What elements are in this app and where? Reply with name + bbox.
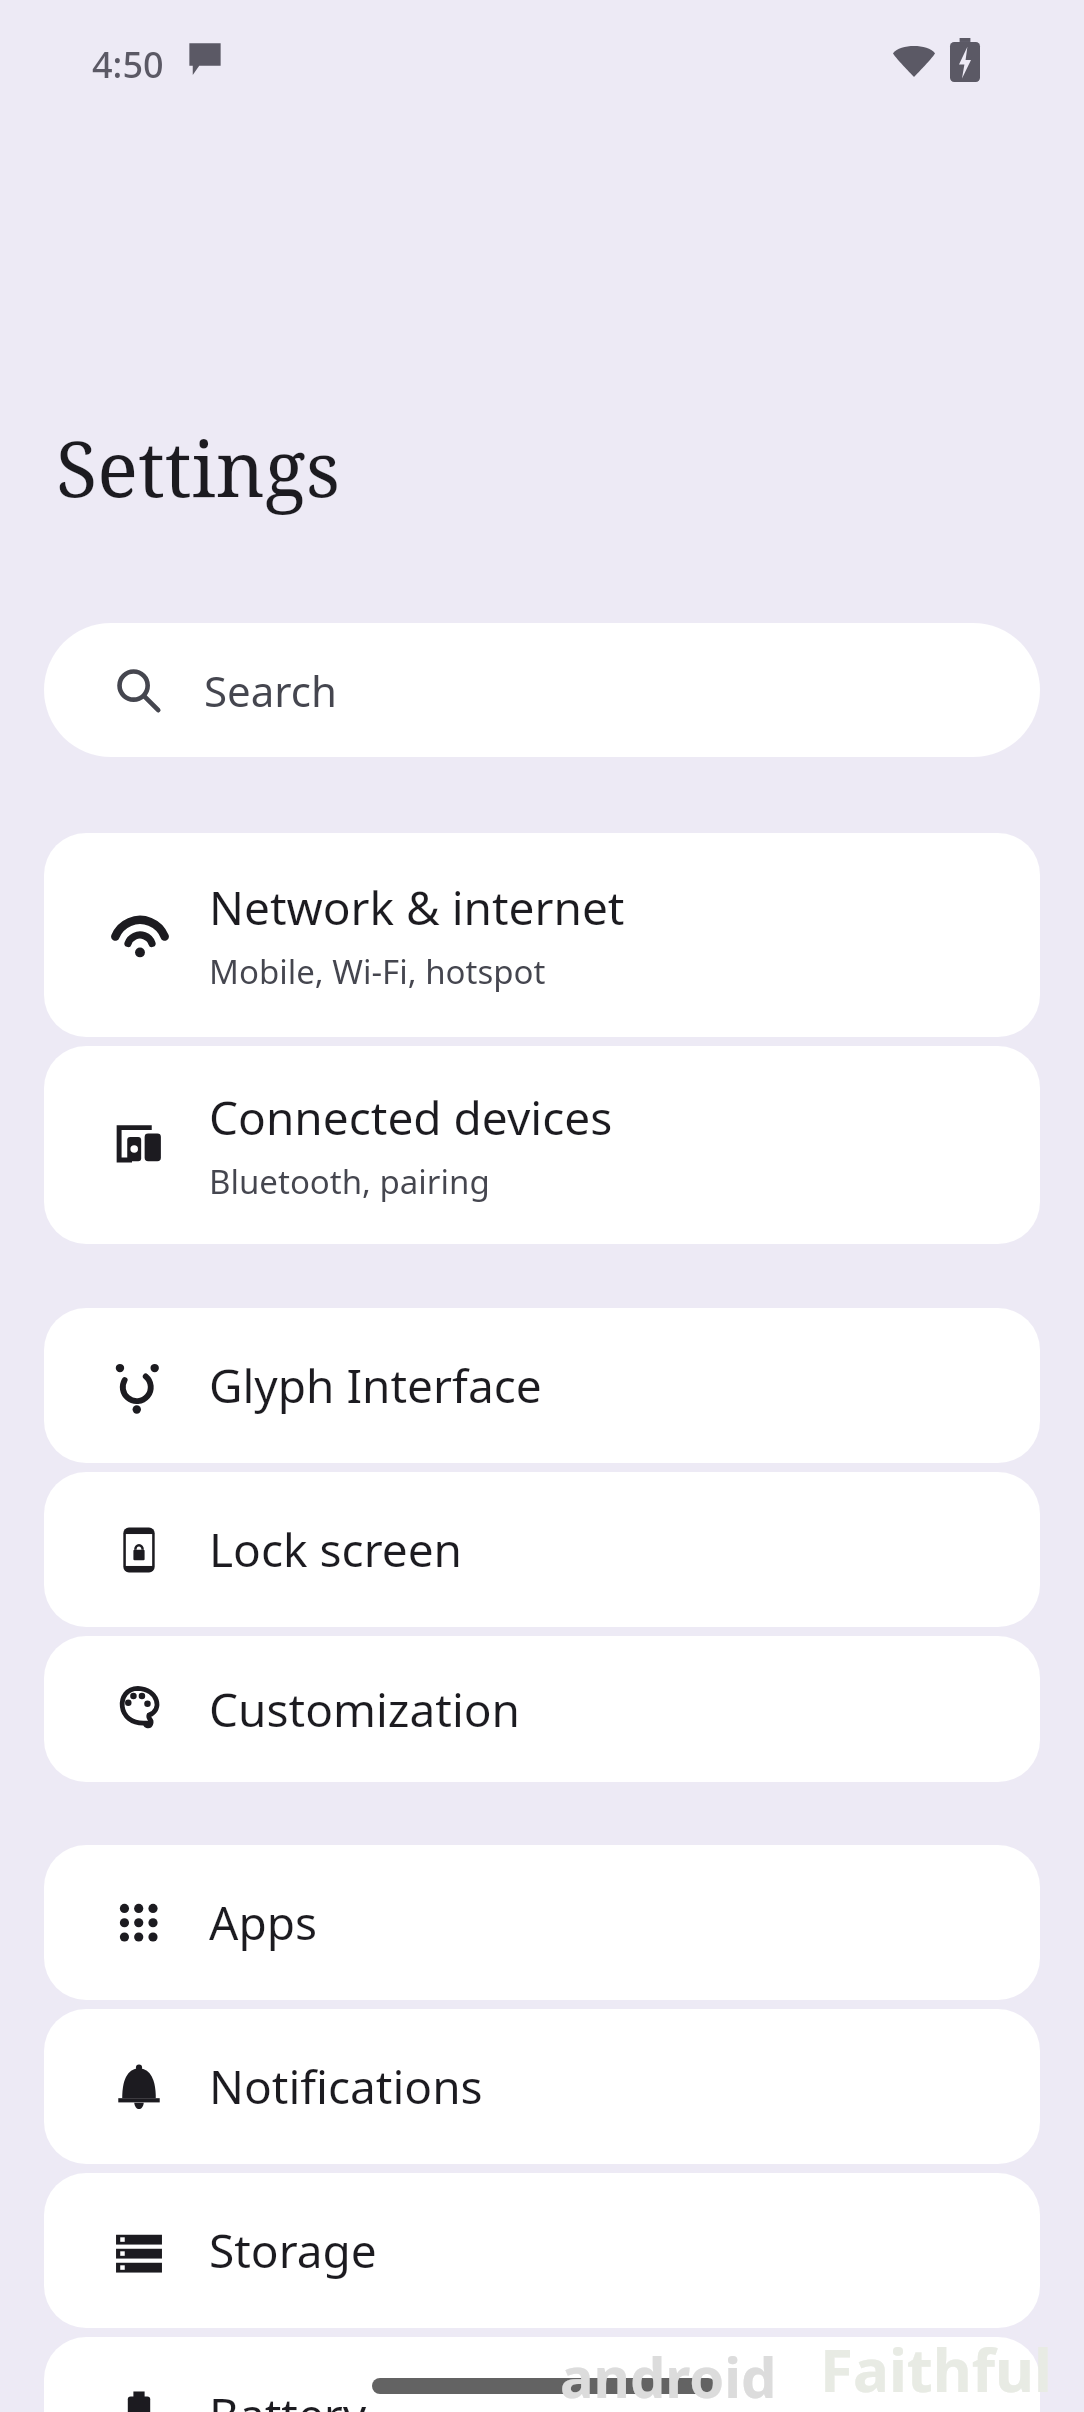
staticText: Storage xyxy=(209,2219,377,2282)
staticText: Battery xyxy=(209,2383,367,2412)
other: Lock screen xyxy=(111,1522,167,1578)
staticText: Faithful xyxy=(820,2328,1052,2410)
button[interactable]: Connected devices xyxy=(44,1046,1040,1244)
button[interactable]: Storage xyxy=(44,2173,1040,2328)
button[interactable]: Apps xyxy=(44,1845,1040,2000)
other: Storage xyxy=(111,2223,167,2279)
staticText: Mobile, Wi-Fi, hotspot xyxy=(209,949,546,994)
staticText: 4:50 xyxy=(92,40,164,89)
staticText: Lock screen xyxy=(209,1518,463,1581)
button[interactable]: Battery xyxy=(44,2337,1040,2412)
other: Connected devices xyxy=(111,1116,169,1174)
other: Notifications xyxy=(111,2059,167,2115)
staticText: Apps xyxy=(209,1891,318,1954)
staticText: Notifications xyxy=(209,2055,483,2118)
button[interactable]: Customization xyxy=(44,1636,1040,1782)
staticText: Glyph Interface xyxy=(209,1354,542,1417)
other: Glyph Interface xyxy=(111,1358,167,1414)
staticText: android xyxy=(560,2338,777,2412)
button[interactable]: Lock screen xyxy=(44,1472,1040,1627)
staticText: Customization xyxy=(209,1678,521,1741)
other: Network and internet xyxy=(111,906,169,964)
button[interactable]: Glyph Interface xyxy=(44,1308,1040,1463)
staticText: Search xyxy=(204,662,337,719)
button[interactable]: Network and internet xyxy=(44,833,1040,1037)
staticText: Network & internet xyxy=(209,876,625,939)
staticText: Connected devices xyxy=(209,1086,613,1149)
staticText: Settings xyxy=(56,416,341,520)
button[interactable]: Notifications xyxy=(44,2009,1040,2164)
staticText: Bluetooth, pairing xyxy=(209,1159,490,1204)
button[interactable]: Search xyxy=(44,623,1040,757)
other: Battery xyxy=(111,2387,167,2412)
other: Apps xyxy=(111,1895,167,1951)
other: Customization xyxy=(111,1681,167,1737)
